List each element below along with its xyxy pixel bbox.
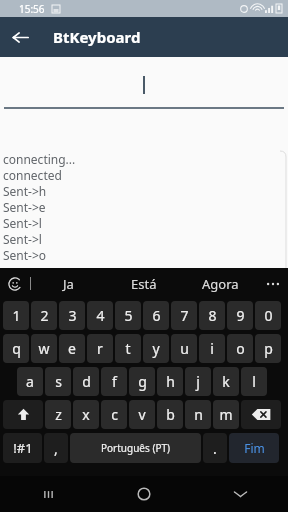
button[interactable]: l — [241, 367, 267, 396]
staticText: c — [111, 405, 118, 424]
button[interactable]: p — [255, 334, 281, 363]
button[interactable]: 7 — [171, 301, 197, 330]
button[interactable]: Emoji — [0, 268, 30, 299]
button[interactable]: 4 — [87, 301, 113, 330]
button[interactable]: 2 — [31, 301, 57, 330]
button[interactable]: Home — [96, 476, 192, 512]
button[interactable]: 5 — [115, 301, 141, 330]
staticText: a — [26, 372, 34, 391]
staticText: m — [219, 405, 233, 424]
staticText: o — [236, 339, 245, 358]
button[interactable]: !#1 — [3, 433, 42, 463]
button[interactable]: r — [87, 334, 113, 363]
staticText: e — [68, 339, 76, 358]
staticText: Sent->e — [3, 199, 46, 215]
staticText: , — [54, 439, 58, 458]
button[interactable]: . — [203, 433, 227, 463]
button[interactable]: 8 — [199, 301, 225, 330]
button[interactable]: s — [45, 367, 71, 396]
button[interactable]: c — [101, 400, 127, 429]
button[interactable]: 0 — [255, 301, 281, 330]
staticText: 2 — [40, 306, 49, 325]
button[interactable]: o — [227, 334, 253, 363]
staticText: Sent->o — [3, 247, 47, 263]
staticText: s — [55, 372, 62, 391]
button[interactable]: Fim — [229, 433, 279, 463]
staticText: t — [125, 339, 131, 358]
staticText: g — [138, 372, 147, 391]
button[interactable]: d — [73, 367, 99, 396]
button[interactable]: y — [143, 334, 169, 363]
staticText: Está — [131, 275, 157, 293]
staticText: r — [97, 339, 103, 358]
button[interactable]: Português (PT) — [70, 433, 201, 463]
button[interactable]: Backspace — [241, 400, 281, 429]
button[interactable]: 9 — [227, 301, 253, 330]
staticText: u — [180, 339, 189, 358]
staticText: 3 — [68, 306, 77, 325]
button[interactable]: j — [185, 367, 211, 396]
staticText: 8 — [208, 306, 217, 325]
staticText: 5 — [124, 306, 133, 325]
staticText: BtKeyboard — [53, 27, 141, 47]
button[interactable]: u — [171, 334, 197, 363]
button[interactable]: k — [213, 367, 239, 396]
button[interactable]: 1 — [3, 301, 29, 330]
button[interactable]: Hide keyboard — [192, 476, 288, 512]
staticText: Português (PT) — [101, 441, 170, 455]
staticText: Fim — [244, 440, 265, 456]
button[interactable]: b — [157, 400, 183, 429]
button[interactable]: z — [45, 400, 71, 429]
button[interactable]: Back — [0, 17, 40, 57]
button[interactable]: Recent apps — [0, 476, 96, 512]
staticText: f — [112, 372, 117, 391]
staticText: Sent->l — [3, 231, 42, 247]
button[interactable]: n — [185, 400, 211, 429]
staticText: p — [264, 339, 273, 358]
staticText: 1 — [12, 306, 21, 325]
staticText: connected — [3, 167, 62, 183]
button[interactable]: , — [44, 433, 68, 463]
staticText: b — [166, 405, 175, 424]
button[interactable]: w — [31, 334, 57, 363]
staticText: l — [252, 372, 256, 391]
staticText: i — [210, 339, 214, 358]
staticText: Sent->l — [3, 215, 42, 231]
button[interactable]: f — [101, 367, 127, 396]
button[interactable]: a — [17, 367, 43, 396]
button[interactable]: v — [129, 400, 155, 429]
button[interactable]: t — [115, 334, 141, 363]
button[interactable]: i — [199, 334, 225, 363]
button[interactable]: g — [129, 367, 155, 396]
button[interactable]: More options — [258, 268, 288, 299]
button[interactable]: h — [157, 367, 183, 396]
staticText: !#1 — [13, 439, 33, 457]
button[interactable]: Agora — [182, 268, 258, 299]
staticText: w — [38, 339, 50, 358]
staticText: 0 — [264, 306, 273, 325]
staticText: 6 — [152, 306, 161, 325]
button[interactable]: 3 — [59, 301, 85, 330]
button[interactable]: Está — [106, 268, 182, 299]
button[interactable]: Ja — [31, 268, 106, 299]
staticText: x — [82, 405, 90, 424]
staticText: y — [152, 339, 160, 358]
button[interactable]: e — [59, 334, 85, 363]
staticText: j — [196, 372, 200, 391]
button[interactable]: 6 — [143, 301, 169, 330]
button[interactable] — [84, 70, 204, 100]
button[interactable]: Shift — [3, 400, 43, 429]
staticText: n — [194, 405, 203, 424]
staticText: Ja — [63, 275, 74, 293]
staticText: d — [82, 372, 91, 391]
staticText: connecting... — [3, 151, 76, 167]
staticText: 7 — [180, 306, 189, 325]
staticText: . — [213, 439, 217, 458]
staticText: 15:56 — [19, 2, 45, 16]
button[interactable]: x — [73, 400, 99, 429]
staticText: Sent->h — [3, 183, 47, 199]
button[interactable]: q — [3, 334, 29, 363]
staticText: z — [55, 405, 62, 424]
staticText: 9 — [236, 306, 245, 325]
button[interactable]: m — [213, 400, 239, 429]
